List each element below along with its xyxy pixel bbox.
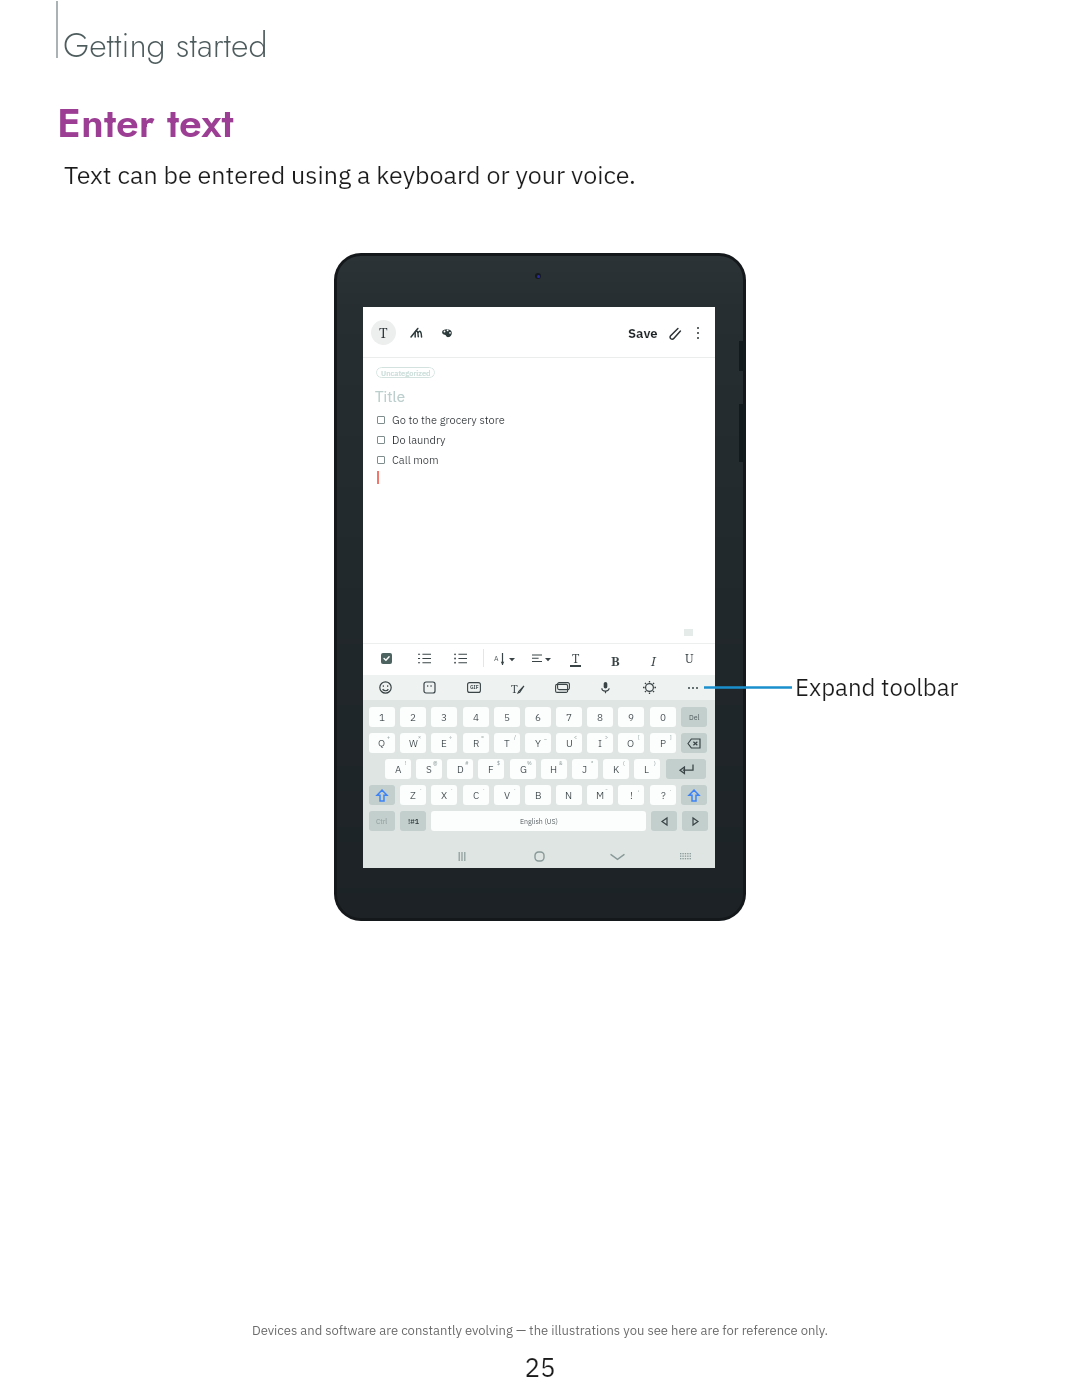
button[interactable]: bksp — [681, 733, 707, 753]
button[interactable]: Handwriting — [404, 320, 429, 345]
button[interactable]: left — [651, 811, 677, 831]
staticText: L — [644, 763, 650, 776]
staticText: Go to the grocery store — [392, 413, 505, 427]
button[interactable]: 2 — [400, 707, 426, 727]
button[interactable]: 4 — [463, 707, 489, 727]
button[interactable]: Go to the grocery store — [363, 410, 715, 430]
button[interactable]: Bulleted list — [454, 653, 467, 664]
staticText: T — [572, 650, 580, 666]
button[interactable]: Attach — [661, 320, 686, 345]
button[interactable]: = — [463, 733, 489, 753]
button[interactable]: Alignment — [532, 651, 554, 667]
button[interactable]: < — [556, 733, 582, 753]
button[interactable]: ÷ — [431, 733, 457, 753]
button[interactable]: Font size — [494, 651, 516, 667]
button[interactable]: Keyboard modes — [555, 682, 570, 693]
staticText: ~ — [605, 786, 609, 793]
button[interactable]: 1 — [369, 707, 395, 727]
button[interactable]: Numbered list — [418, 653, 431, 664]
button[interactable]: Stickers — [423, 681, 436, 694]
button[interactable]: > — [587, 733, 613, 753]
button[interactable]: shift — [681, 785, 707, 805]
button[interactable]: 9 — [618, 707, 644, 727]
staticText: ) — [654, 760, 656, 767]
button[interactable]: I — [651, 652, 656, 670]
button[interactable]: 0 — [650, 707, 676, 727]
button[interactable]: · — [463, 785, 489, 805]
button[interactable]: right — [682, 811, 708, 831]
button[interactable]: 3 — [431, 707, 457, 727]
button[interactable]: 6 — [525, 707, 551, 727]
button[interactable]: GIF — [467, 682, 481, 693]
button[interactable]: !#1 — [400, 811, 426, 831]
button[interactable]: & — [541, 759, 567, 779]
button[interactable]: enter — [666, 759, 706, 779]
staticText: M — [596, 789, 605, 802]
button[interactable]: _ — [525, 733, 551, 753]
button[interactable]: · — [494, 785, 520, 805]
button[interactable]: ~ — [587, 785, 613, 805]
button[interactable]: Expand toolbar — [685, 681, 700, 694]
button[interactable]: English (US) — [431, 811, 646, 831]
button[interactable]: 7 — [556, 707, 582, 727]
button[interactable]: [ — [618, 733, 644, 753]
button[interactable]: , — [618, 785, 644, 805]
button[interactable]: Checklist — [381, 653, 392, 664]
staticText: Uncategorized — [381, 368, 431, 378]
button[interactable]: ! — [385, 759, 411, 779]
button[interactable]: ( — [603, 759, 629, 779]
button[interactable]: Call mom — [363, 450, 715, 470]
button[interactable]: × — [400, 733, 426, 753]
button[interactable]: . — [650, 785, 676, 805]
staticText: P — [660, 737, 667, 750]
button[interactable]: B — [525, 785, 551, 805]
button[interactable]: * — [572, 759, 598, 779]
staticText: X — [441, 789, 448, 802]
button[interactable]: + — [369, 733, 395, 753]
button[interactable]: Emoji — [379, 681, 392, 694]
button[interactable]: # — [447, 759, 473, 779]
button[interactable]: B — [611, 652, 620, 670]
button[interactable]: % — [510, 759, 536, 779]
button[interactable]: More options — [685, 320, 710, 345]
button[interactable]: Handwriting input — [511, 681, 526, 694]
staticText: U — [566, 737, 573, 750]
button[interactable]: @ — [416, 759, 442, 779]
staticText: S — [426, 763, 432, 776]
button[interactable]: · — [400, 785, 426, 805]
staticText: & — [559, 760, 563, 767]
staticText: % — [527, 760, 532, 767]
button[interactable]: $ — [478, 759, 504, 779]
staticText: 9 — [628, 711, 634, 724]
button[interactable]: shift — [369, 785, 395, 805]
button[interactable]: Save — [628, 325, 658, 342]
button[interactable]: Underline — [681, 650, 697, 666]
button[interactable]: 5 — [494, 707, 520, 727]
button[interactable]: Home — [534, 851, 545, 862]
button[interactable]: Recents — [457, 852, 467, 861]
staticText: U — [685, 650, 694, 666]
button[interactable]: 8 — [587, 707, 613, 727]
staticText: E — [441, 737, 447, 750]
button[interactable]: Text mode — [371, 320, 396, 345]
button[interactable]: Uncategorized — [376, 367, 435, 378]
button[interactable]: Switch keyboard — [680, 853, 692, 861]
button[interactable]: Ctrl — [369, 811, 395, 831]
button[interactable]: / — [494, 733, 520, 753]
button[interactable]: Keyboard settings — [643, 681, 656, 694]
button[interactable]: Do laundry — [363, 430, 715, 450]
button[interactable]: ) — [634, 759, 660, 779]
button[interactable]: Del — [681, 707, 707, 727]
button[interactable]: Text color — [566, 650, 584, 668]
button[interactable]: N — [556, 785, 582, 805]
button[interactable]: · — [431, 785, 457, 805]
staticText: 2 — [410, 711, 416, 724]
staticText: GIF — [470, 684, 479, 691]
button[interactable]: Hide keyboard — [611, 853, 624, 861]
staticText: · — [514, 786, 516, 793]
button[interactable]: Voice input — [599, 681, 612, 694]
staticText: 3 — [441, 711, 447, 724]
staticText: English (US) — [520, 817, 558, 826]
button[interactable]: ] — [650, 733, 676, 753]
button[interactable]: Drawing — [434, 320, 459, 345]
